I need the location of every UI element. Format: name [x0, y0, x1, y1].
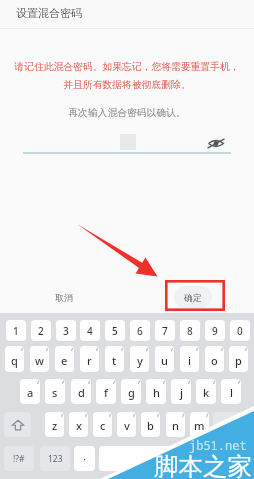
- staticText: 4: [87, 324, 93, 338]
- button[interactable]: e: [55, 346, 74, 372]
- staticText: !?#: [13, 453, 25, 465]
- staticText: 确定: [184, 293, 202, 304]
- button[interactable]: c: [93, 412, 112, 437]
- staticText: v: [124, 418, 130, 433]
- staticText: f: [104, 385, 108, 400]
- staticText: m: [194, 418, 205, 433]
- button[interactable]: g: [121, 379, 141, 404]
- staticText: y: [137, 353, 143, 368]
- button[interactable]: t: [105, 346, 124, 372]
- staticText: 6: [137, 324, 143, 338]
- button[interactable]: 4: [80, 320, 100, 341]
- button[interactable]: 取消: [42, 287, 86, 310]
- button[interactable]: 9: [205, 320, 225, 341]
- button[interactable]: q: [5, 346, 24, 372]
- button[interactable]: o: [205, 346, 224, 372]
- staticText: u: [161, 353, 168, 368]
- staticText: c: [100, 418, 106, 433]
- button[interactable]: d: [71, 379, 91, 404]
- staticText: q: [11, 353, 18, 368]
- button[interactable]: Period: [193, 446, 214, 471]
- staticText: s: [52, 385, 58, 400]
- staticText: a: [27, 385, 34, 400]
- staticText: p: [235, 353, 242, 368]
- staticText: 。: [199, 451, 208, 462]
- button[interactable]: j: [171, 379, 191, 404]
- button[interactable]: 0: [230, 320, 250, 341]
- button[interactable]: l: [221, 379, 241, 404]
- staticText: 0: [237, 324, 243, 338]
- button[interactable]: v: [117, 412, 136, 437]
- button[interactable]: 确定: [174, 286, 212, 308]
- staticText: 8: [187, 324, 193, 338]
- staticText: 再次输入混合密码以确认。: [0, 107, 254, 119]
- button[interactable]: 5: [105, 320, 125, 341]
- button[interactable]: 6: [130, 320, 150, 341]
- staticText: 设置混合密码: [16, 6, 82, 20]
- button[interactable]: Symbols: [4, 446, 34, 471]
- button[interactable]: y: [130, 346, 149, 372]
- staticText: z: [52, 418, 58, 433]
- staticText: l: [230, 385, 233, 400]
- staticText: 7: [162, 324, 168, 338]
- button[interactable]: Space: [99, 446, 189, 471]
- button[interactable]: 1: [6, 320, 26, 341]
- staticText: b: [147, 418, 154, 433]
- button[interactable]: Backspace: [213, 412, 249, 437]
- button[interactable]: Hide password: [206, 133, 226, 153]
- staticText: d: [78, 385, 85, 400]
- staticText: e: [61, 353, 68, 368]
- button[interactable]: Comma: [74, 446, 95, 471]
- staticText: w: [35, 353, 44, 368]
- staticText: k: [203, 385, 210, 400]
- button[interactable]: p: [229, 346, 248, 372]
- button[interactable]: w: [30, 346, 49, 372]
- button[interactable]: 3: [56, 320, 76, 341]
- staticText: jb51.net: [189, 437, 247, 453]
- button[interactable]: h: [146, 379, 166, 404]
- button[interactable]: a: [20, 379, 40, 404]
- staticText: r: [87, 353, 92, 368]
- button[interactable]: u: [155, 346, 174, 372]
- button[interactable]: k: [196, 379, 216, 404]
- staticText: h: [153, 385, 160, 400]
- button[interactable]: f: [96, 379, 116, 404]
- staticText: i: [188, 353, 191, 368]
- button[interactable]: z: [45, 412, 64, 437]
- staticText: 1: [13, 324, 19, 338]
- staticText: 2: [38, 324, 44, 338]
- button[interactable]: 7: [155, 320, 175, 341]
- button[interactable]: r: [80, 346, 99, 372]
- button[interactable]: m: [190, 412, 209, 437]
- button[interactable]: b: [141, 412, 160, 437]
- button[interactable]: s: [45, 379, 65, 404]
- staticText: 3: [63, 324, 69, 338]
- button[interactable]: 2: [31, 320, 51, 341]
- button[interactable]: Numbers: [40, 446, 70, 471]
- button[interactable]: 8: [180, 320, 200, 341]
- staticText: 取消: [55, 293, 73, 304]
- button[interactable]: i: [180, 346, 199, 372]
- staticText: j: [180, 385, 183, 400]
- staticText: 请记住此混合密码。如果忘记，您将需要重置手机， 并且所有数据将被彻底删除。: [0, 61, 254, 91]
- staticText: t: [112, 353, 117, 368]
- button[interactable]: n: [166, 412, 185, 437]
- staticText: o: [211, 353, 218, 368]
- button[interactable]: Enter: [218, 446, 249, 471]
- staticText: ，: [80, 451, 89, 462]
- staticText: n: [172, 418, 179, 433]
- staticText: g: [128, 385, 135, 400]
- staticText: 脚本之家: [154, 451, 252, 479]
- staticText: 123: [48, 453, 63, 465]
- button[interactable]: Shift: [4, 412, 31, 437]
- staticText: 9: [212, 324, 218, 338]
- staticText: 5: [112, 324, 118, 338]
- staticText: x: [76, 418, 82, 433]
- button[interactable]: x: [69, 412, 88, 437]
